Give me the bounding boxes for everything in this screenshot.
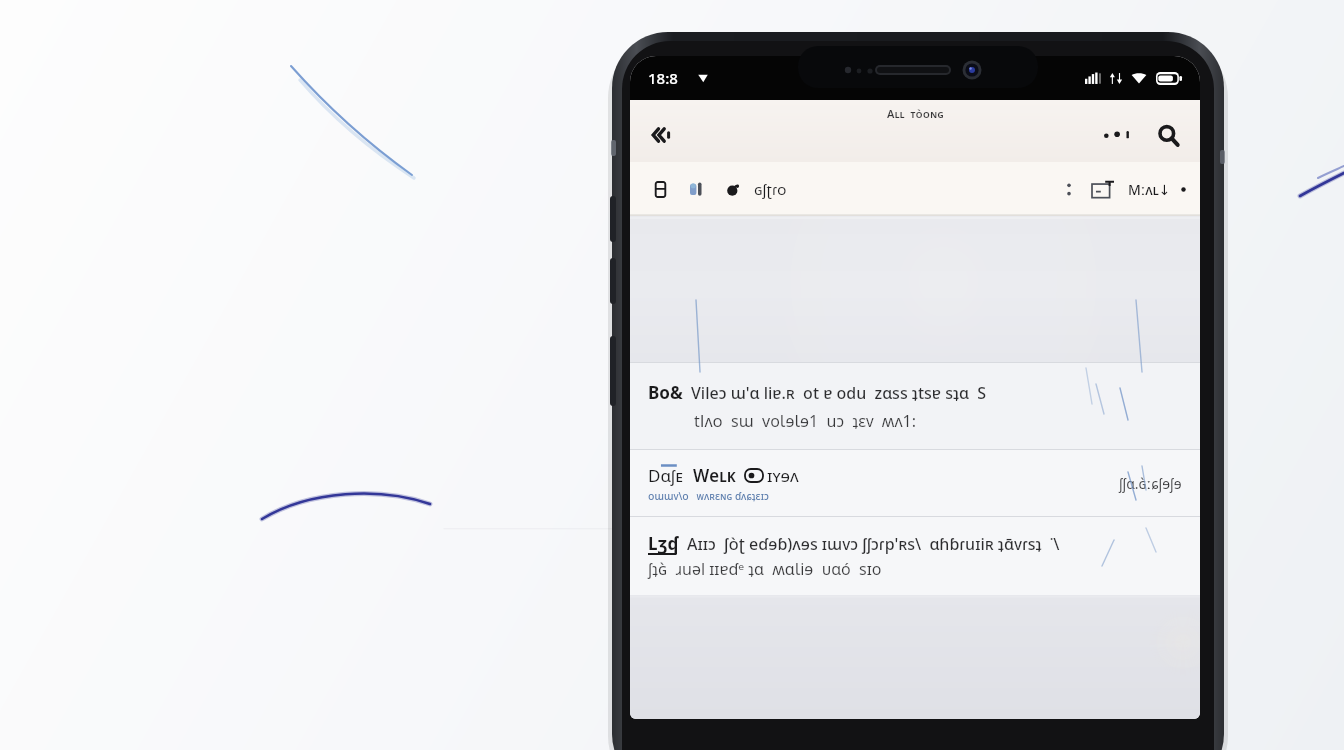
button[interactable]: Compose xyxy=(1086,174,1120,204)
button[interactable]: Back xyxy=(640,113,684,157)
staticText: Mːʌʟ↓ xyxy=(1128,180,1171,199)
button[interactable]: Dɑʃᴇ xyxy=(630,450,1200,516)
staticText: ɢʃʈɾᴏ xyxy=(754,179,787,199)
button[interactable]: Filter xyxy=(682,173,714,205)
button[interactable]: Search xyxy=(1146,113,1190,157)
staticText: tⅠʌᴏ sɯ voƖɘƖɘ1 uɔ ʇɛᴠ ʍʌ1: xyxy=(694,410,917,432)
staticText: ʃʇɢ̀ ɹuəl ɪɪɐɗᵉ ʇɑ ʍɑƖiɘ ᴜɑó sɪo xyxy=(648,558,882,580)
button[interactable]: More options xyxy=(1094,115,1146,155)
staticText: ʃʃɑ.ɢ̀ːɕʃɘʃɘ xyxy=(1119,474,1182,493)
staticText: Bo& xyxy=(648,381,683,404)
staticText: Wеʟᴋ xyxy=(693,464,737,487)
staticText: Aʟʟ ᴛᴏ̀ᴏɴɢ xyxy=(887,106,944,121)
button[interactable]: Lʒʠ xyxy=(630,517,1200,595)
button[interactable]: Bo& xyxy=(630,363,1200,449)
button[interactable]: Sort xyxy=(1058,174,1080,204)
staticText: 18:8 xyxy=(648,68,678,88)
button[interactable]: Archive xyxy=(644,173,676,205)
button[interactable]: Label xyxy=(718,174,748,204)
staticText: Lʒʠ xyxy=(648,532,679,555)
staticText: ɪʏɘʌ xyxy=(767,464,799,487)
staticText: Dɑʃᴇ xyxy=(648,464,684,487)
staticText: Aɪɪɔ ʃᴏ̀ʈ eɗɘɓ)ʌɘs ɪɯᴠɔ ʃʃɔɾp'ʀs\ ɑɦɓɾuɪ… xyxy=(687,533,1060,555)
staticText: ᴏɯɯᴠ\ᴏ ᴡʌʀɛɴɢ ɗʌɕʇɛɪɔ xyxy=(648,489,769,503)
staticText: Vileɔ ɯ'ɑ liɐ.ʀ ot ɐ odu zɑss ʇtsɐ sʇɑ S xyxy=(691,382,987,404)
